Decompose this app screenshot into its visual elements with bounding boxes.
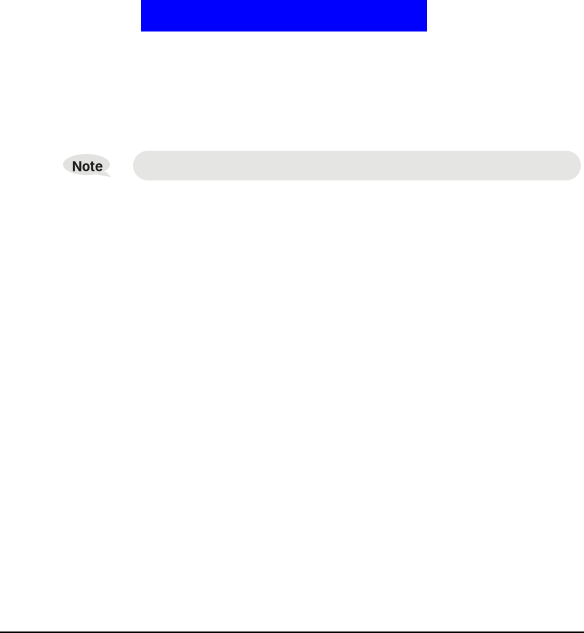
staticText: Note (72, 158, 103, 174)
button[interactable]: Note (63, 154, 110, 178)
button[interactable]: Header banner (141, 0, 427, 31)
